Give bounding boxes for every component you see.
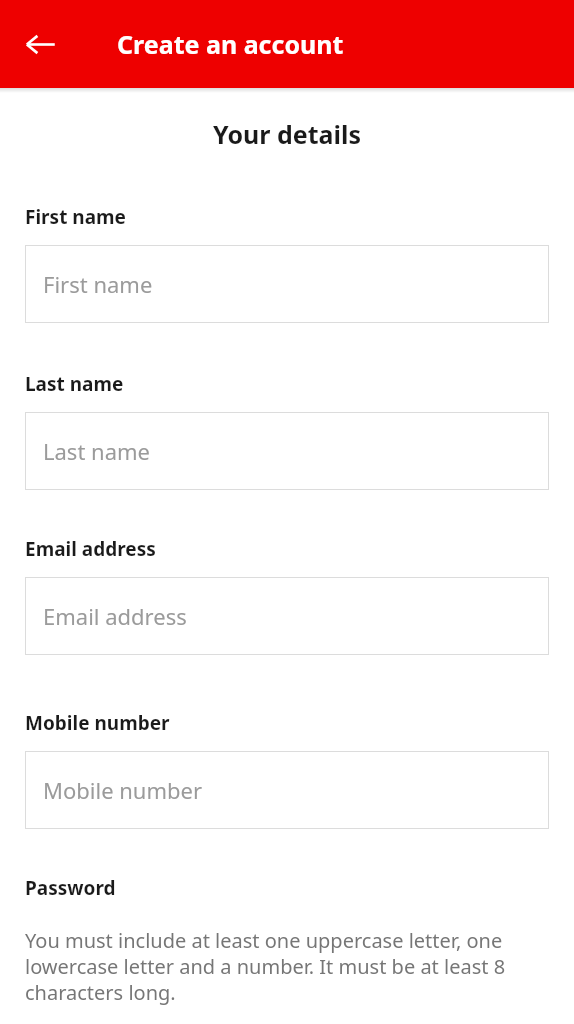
button[interactable]: Last name <box>25 412 549 490</box>
staticText: Your details <box>25 117 549 151</box>
staticText: Password <box>25 875 116 901</box>
staticText: Mobile number <box>25 710 170 736</box>
staticText: Mobile number <box>43 775 203 805</box>
staticText: Create an account <box>117 27 344 61</box>
button[interactable]: Mobile number <box>25 751 549 829</box>
staticText: You must include at least one uppercase … <box>25 927 549 1006</box>
staticText: Email address <box>25 536 156 562</box>
staticText: Email address <box>43 601 187 631</box>
button[interactable]: Email address <box>25 577 549 655</box>
staticText: First name <box>43 269 153 299</box>
staticText: First name <box>25 204 126 230</box>
staticText: Last name <box>43 436 150 466</box>
staticText: Last name <box>25 371 124 397</box>
button[interactable]: First name <box>25 245 549 323</box>
button[interactable]: Back <box>12 16 68 72</box>
